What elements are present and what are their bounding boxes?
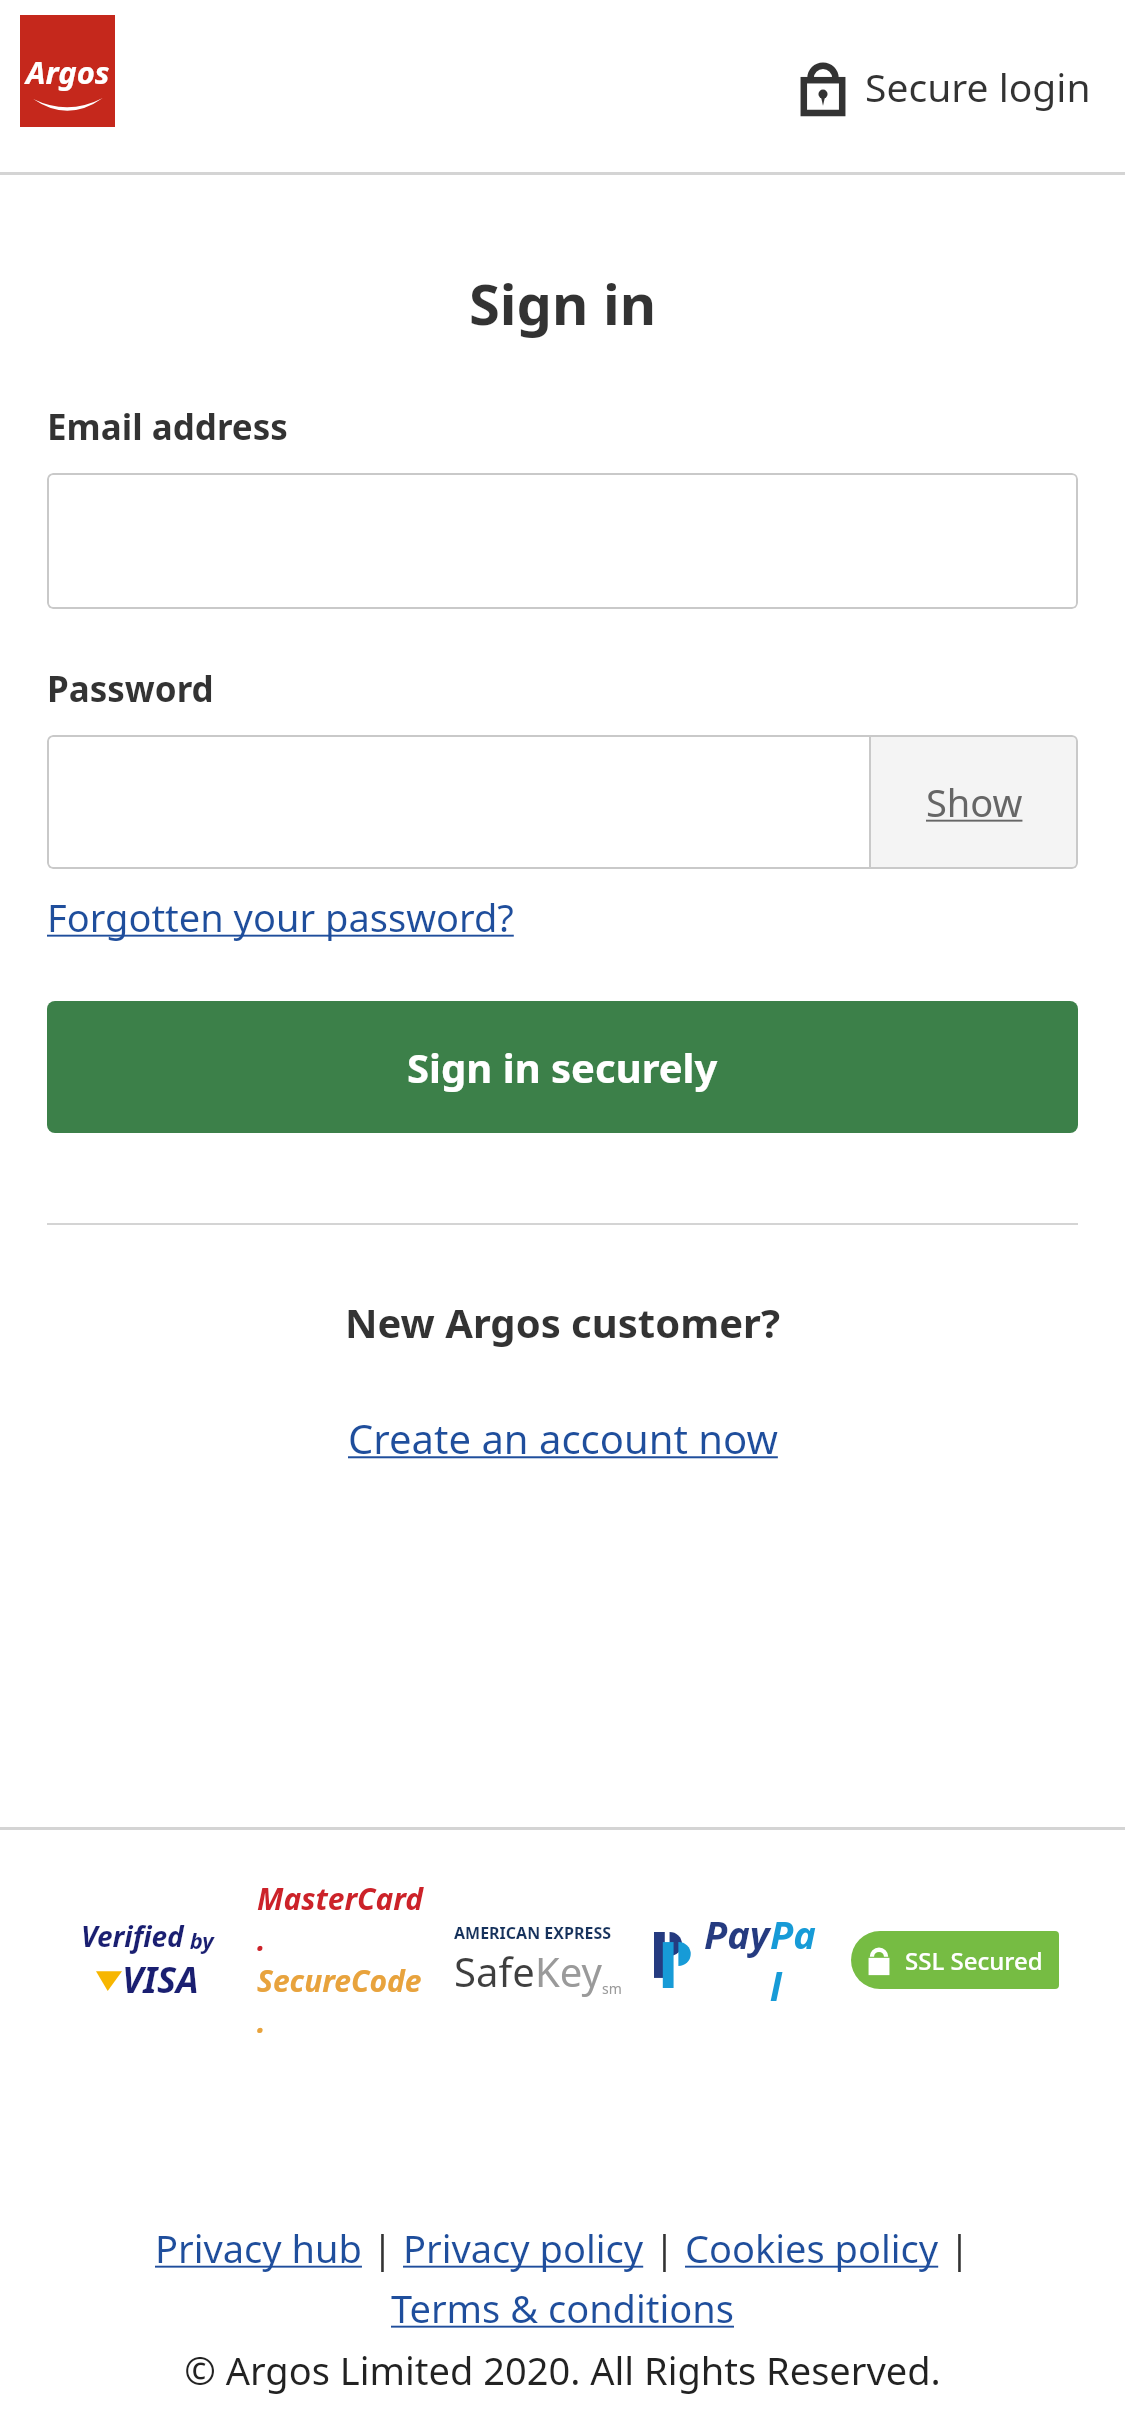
staticText: SecureCode.: [257, 1960, 425, 2042]
button[interactable]: Sign in securely: [47, 1001, 1078, 1133]
staticText: Pal: [770, 1908, 822, 2012]
staticText: Create an account now: [348, 1411, 778, 1465]
staticText: Secure login: [865, 60, 1091, 113]
staticText: Pay: [704, 1908, 770, 1960]
button[interactable]: Terms & conditions: [391, 2282, 734, 2334]
staticText: Email address: [47, 403, 288, 451]
staticText: Argos: [26, 51, 110, 93]
button[interactable]: Create an account now: [348, 1411, 778, 1465]
staticText: Cookies policy: [685, 2222, 939, 2274]
staticText: VISA: [122, 1955, 199, 2004]
button[interactable]: Argos: [20, 15, 115, 127]
staticText: Terms & conditions: [391, 2282, 734, 2334]
staticText: Verified: [81, 1917, 184, 1955]
staticText: Privacy policy: [403, 2222, 644, 2274]
staticText: MasterCard.: [257, 1878, 425, 1960]
button[interactable]: Cookies policy: [685, 2222, 939, 2274]
staticText: Sign in: [0, 265, 1125, 341]
staticText: Key: [535, 1944, 602, 1998]
button[interactable]: Forgotten your password?: [47, 891, 514, 943]
staticText: |: [939, 2222, 970, 2274]
button[interactable]: Privacy policy: [403, 2222, 644, 2274]
staticText: |: [362, 2222, 403, 2274]
staticText: SSL Secured: [905, 1944, 1043, 1977]
button[interactable]: [47, 735, 869, 869]
staticText: © Argos Limited 2020. All Rights Reserve…: [0, 2344, 1125, 2396]
staticText: sm: [602, 1979, 622, 1998]
other: Secure: [799, 57, 847, 115]
staticText: Password: [47, 665, 214, 713]
staticText: New Argos customer?: [47, 1295, 1078, 1349]
staticText: by: [184, 1925, 214, 1955]
button[interactable]: Secure: [799, 57, 1091, 115]
staticText: |: [644, 2222, 685, 2274]
staticText: Show: [926, 776, 1023, 828]
button[interactable]: Privacy hub: [155, 2222, 362, 2274]
staticText: Forgotten your password?: [47, 891, 514, 943]
staticText: Privacy hub: [155, 2222, 362, 2274]
staticText: Safe: [454, 1944, 535, 1998]
staticText: Sign in securely: [407, 1040, 718, 1094]
button[interactable]: [47, 473, 1078, 609]
button[interactable]: Show: [871, 735, 1078, 869]
staticText: AMERICAN EXPRESS: [454, 1922, 612, 1944]
